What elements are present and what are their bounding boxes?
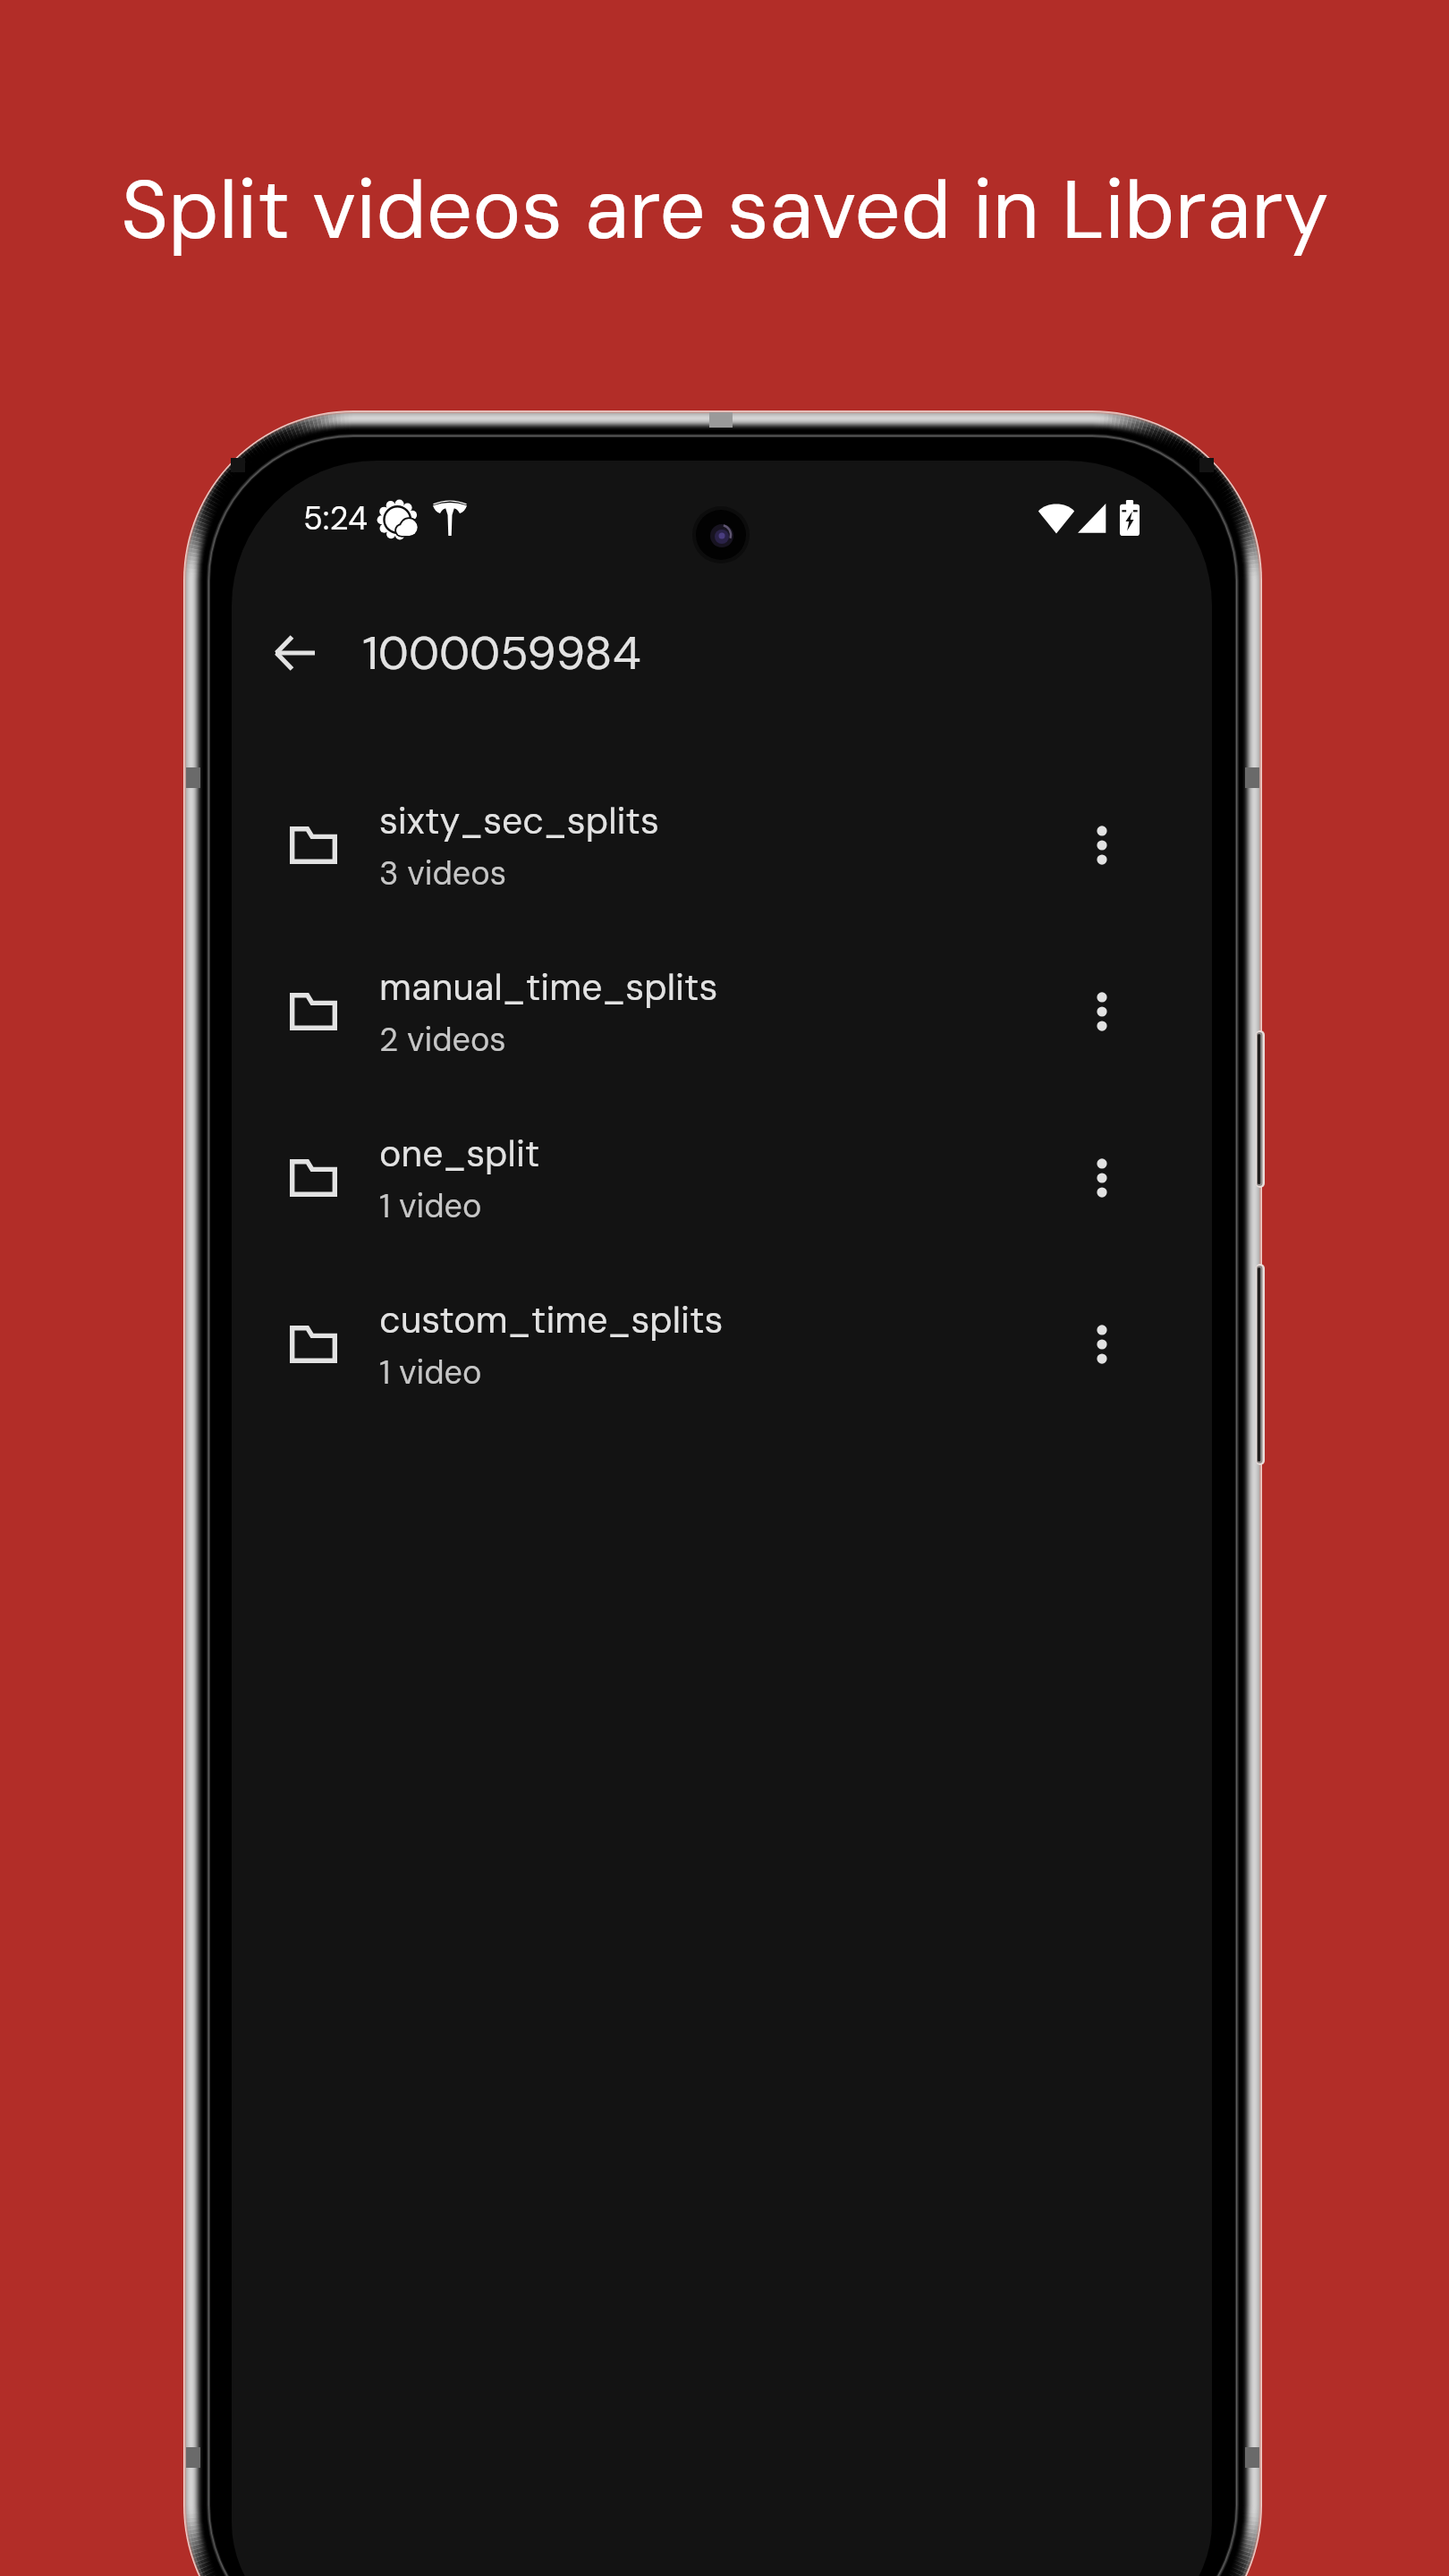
staticText: 1000059984 [362,623,641,683]
button[interactable]: More options [1057,1133,1147,1223]
staticText: one_split [379,1130,540,1177]
button[interactable]: Back [250,607,341,699]
staticText: 5:24 [303,497,369,539]
staticText: 2 videos [379,1019,506,1061]
staticText: manual_time_splits [379,963,718,1011]
staticText: 1 video [379,1352,482,1394]
staticText: custom_time_splits [379,1296,724,1343]
button[interactable]: custom_time_splits [232,1262,1212,1428]
staticText: 3 videos [379,852,507,894]
button[interactable]: manual_time_splits [232,929,1212,1096]
button[interactable]: More options [1057,1300,1147,1389]
button[interactable]: More options [1057,967,1147,1056]
button[interactable]: sixty_sec_splits [232,763,1212,929]
staticText: 1 video [379,1185,482,1227]
staticText: sixty_sec_splits [379,797,659,844]
button[interactable]: one_split [232,1096,1212,1262]
button[interactable]: More options [1057,801,1147,890]
staticText: Split videos are saved in Library [121,157,1329,263]
